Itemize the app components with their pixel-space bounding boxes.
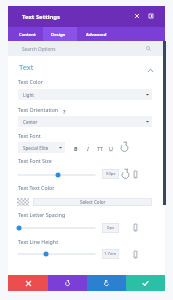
button[interactable]: I xyxy=(83,143,93,153)
staticText: U xyxy=(109,145,113,152)
button[interactable]: Expand xyxy=(146,11,156,21)
button[interactable]: B xyxy=(71,143,81,153)
button[interactable]: Special Elite xyxy=(18,142,65,153)
button[interactable]: Collapse Text section xyxy=(146,66,155,75)
button[interactable]: Reset xyxy=(121,170,130,179)
button[interactable]: Cancel xyxy=(8,275,48,291)
button[interactable]: Slider handle xyxy=(43,251,49,257)
button[interactable]: Center xyxy=(18,116,152,127)
button[interactable]: Content xyxy=(8,27,43,42)
staticText: Content xyxy=(19,32,36,38)
staticText: TT xyxy=(97,145,104,152)
button[interactable]: Slider handle xyxy=(16,225,22,231)
staticText: B xyxy=(74,145,78,152)
button[interactable]: Design xyxy=(43,27,77,42)
button[interactable]: Text xyxy=(19,62,34,72)
staticText: Text Font xyxy=(18,132,41,139)
button[interactable]: 1.7em xyxy=(102,249,119,259)
button[interactable]: Save xyxy=(126,275,165,291)
staticText: Text Orientation xyxy=(18,106,59,113)
button[interactable]: Color swatch xyxy=(17,198,29,206)
staticText: 50px xyxy=(106,171,116,177)
staticText: 1.7em xyxy=(104,251,117,257)
button[interactable]: U xyxy=(106,143,116,153)
staticText: Text Font Size xyxy=(18,157,52,164)
button[interactable]: TT xyxy=(95,143,105,153)
button[interactable]: Light xyxy=(18,89,152,100)
button[interactable]: Responsive options xyxy=(131,170,140,179)
button[interactable]: Close xyxy=(132,11,142,21)
staticText: Light xyxy=(23,92,34,98)
button[interactable]: Redo xyxy=(87,275,126,291)
button[interactable]: 50px xyxy=(102,169,119,179)
staticText: Advanced xyxy=(86,32,107,38)
button[interactable]: Reset font xyxy=(120,143,129,152)
staticText: Center xyxy=(23,119,38,125)
button[interactable]: Advanced xyxy=(77,27,117,42)
staticText: Design xyxy=(51,32,66,38)
button[interactable]: Slider handle xyxy=(55,172,61,178)
staticText: 0px xyxy=(107,225,115,231)
button[interactable]: 0px xyxy=(102,223,119,233)
staticText: ? xyxy=(63,109,66,116)
button[interactable]: Responsive options xyxy=(131,223,140,232)
staticText: Text Line Height xyxy=(18,238,59,245)
button[interactable]: Select Color xyxy=(33,198,152,206)
staticText: Text Color xyxy=(18,78,43,85)
staticText: I xyxy=(87,145,89,152)
button[interactable]: Undo xyxy=(48,275,87,291)
staticText: Text Text Color xyxy=(18,184,55,191)
staticText: Special Elite xyxy=(23,145,49,151)
staticText: Text Settings xyxy=(22,13,61,21)
staticText: Text Letter Spacing xyxy=(18,211,66,218)
button[interactable]: Help xyxy=(61,109,68,116)
staticText: Select Color xyxy=(80,199,106,205)
button[interactable]: Responsive options xyxy=(131,250,140,259)
staticText: Search Options xyxy=(22,46,56,52)
